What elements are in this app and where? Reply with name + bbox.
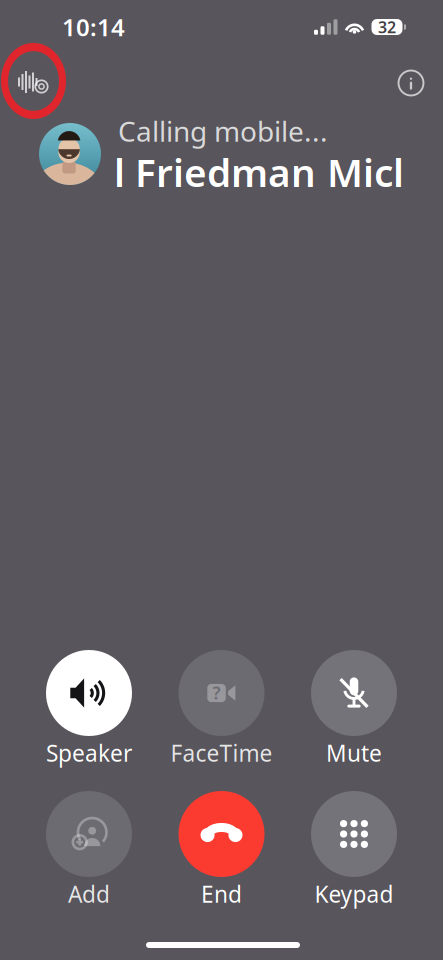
button[interactable]: Speaker [29,650,149,770]
staticText: 32 [378,16,396,38]
button[interactable]: Audio routing [11,60,55,104]
button[interactable]: Call details [391,63,431,103]
staticText: Micl [327,146,404,198]
button[interactable]: ? [161,650,281,770]
staticText: Calling mobile... [118,112,328,150]
staticText: Mute [326,738,382,768]
staticText: Add [68,879,110,909]
staticText: End [201,879,242,909]
staticText: ? [213,681,221,704]
button[interactable]: End [161,791,281,911]
button[interactable]: Keypad [294,791,414,911]
staticText: l Friedman [114,146,316,198]
staticText: FaceTime [170,738,272,768]
staticText: Keypad [314,879,393,909]
staticText: Speaker [46,738,132,768]
button[interactable]: Mute [294,650,414,770]
button[interactable]: Add [29,791,149,911]
staticText: 10:14 [62,11,125,43]
